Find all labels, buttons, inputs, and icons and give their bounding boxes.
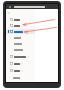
button[interactable]: Active users <box>6 29 35 34</box>
button[interactable]: Users <box>6 23 35 28</box>
button[interactable]: Show all <box>6 76 35 80</box>
button[interactable]: Contacts <box>6 35 35 40</box>
button[interactable]: Deleted users <box>6 47 35 52</box>
button[interactable]: Teams and groups <box>6 54 35 59</box>
button[interactable]: Guest users <box>6 41 35 46</box>
button[interactable]: Home <box>6 17 35 22</box>
button[interactable]: App launcher <box>8 5 11 8</box>
button[interactable]: Toggle navigation <box>6 11 35 15</box>
button[interactable]: Billing <box>6 61 35 66</box>
button[interactable]: Setup <box>6 68 35 73</box>
